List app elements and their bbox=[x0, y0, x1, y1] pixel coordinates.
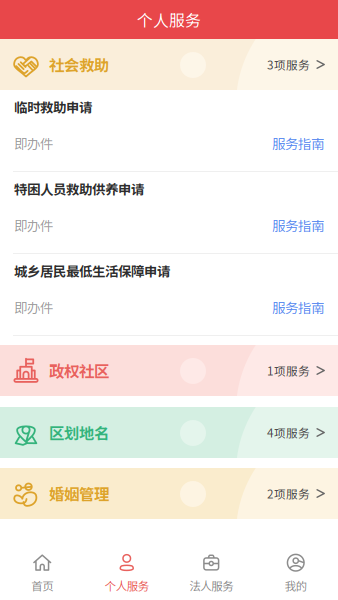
button[interactable]: 特困人员救助供养申请 bbox=[0, 172, 338, 254]
button[interactable]: 区划地名 bbox=[0, 407, 338, 458]
staticText: 社会救助 bbox=[49, 53, 109, 76]
staticText: 即办件 bbox=[14, 215, 53, 235]
staticText: 区划地名 bbox=[49, 421, 109, 444]
staticText: 政权社区 bbox=[49, 359, 109, 382]
button[interactable]: 政权社区 bbox=[0, 345, 338, 396]
button[interactable]: 我的 bbox=[253, 546, 338, 600]
staticText: 我的 bbox=[285, 577, 307, 594]
staticText: 城乡居民最低生活保障申请 bbox=[14, 261, 170, 280]
staticText: 即办件 bbox=[14, 133, 53, 153]
button[interactable]: 法人服务 bbox=[169, 546, 253, 600]
button[interactable]: 个人服务 bbox=[84, 546, 169, 600]
staticText: 临时救助申请 bbox=[14, 97, 92, 116]
staticText: 法人服务 bbox=[189, 577, 233, 594]
staticText: 2项服务 bbox=[267, 485, 310, 502]
staticText: 特困人员救助供养申请 bbox=[14, 179, 144, 198]
staticText: 1项服务 bbox=[267, 362, 310, 379]
staticText: 服务指南 bbox=[272, 133, 324, 153]
button[interactable]: 社会救助 bbox=[0, 39, 338, 90]
button[interactable]: 首页 bbox=[0, 546, 84, 600]
staticText: 首页 bbox=[31, 577, 53, 594]
staticText: 个人服务 bbox=[105, 577, 149, 594]
button[interactable]: 城乡居民最低生活保障申请 bbox=[0, 254, 338, 336]
button[interactable]: 临时救助申请 bbox=[0, 90, 338, 172]
button[interactable]: 婚姻管理 bbox=[0, 468, 338, 519]
staticText: 即办件 bbox=[14, 297, 53, 317]
staticText: 婚姻管理 bbox=[49, 482, 109, 505]
staticText: 4项服务 bbox=[267, 424, 310, 441]
staticText: 服务指南 bbox=[272, 297, 324, 317]
staticText: 服务指南 bbox=[272, 215, 324, 235]
staticText: 3项服务 bbox=[267, 56, 310, 73]
staticText: 个人服务 bbox=[137, 8, 201, 31]
